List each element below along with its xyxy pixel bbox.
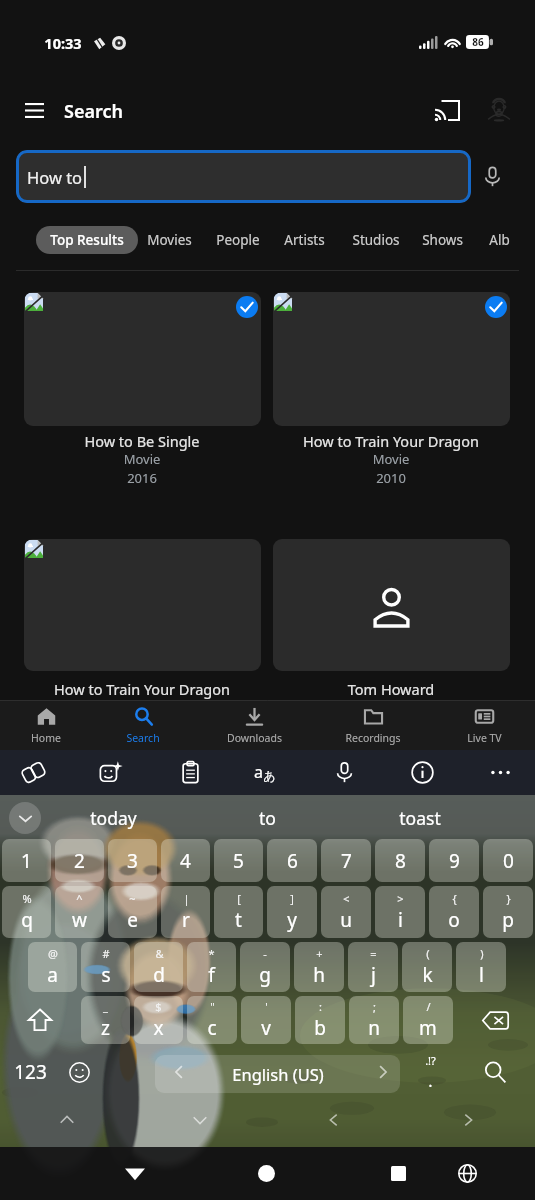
staticText: Top Results — [50, 231, 124, 249]
button[interactable]: Translate — [245, 752, 285, 792]
button[interactable]: # — [81, 942, 130, 992]
button[interactable]: 5 — [214, 839, 263, 882]
staticText: i — [398, 907, 403, 933]
button[interactable]: Recordings — [325, 700, 421, 750]
button[interactable]: ~ — [108, 886, 157, 938]
button[interactable]: Expand toolbar — [9, 802, 41, 834]
button[interactable]: Right — [446, 1098, 490, 1142]
button[interactable]: Top Results — [36, 226, 138, 254]
button[interactable]: People — [216, 229, 260, 251]
button[interactable]: Down — [178, 1098, 222, 1142]
button[interactable]: [ — [214, 886, 263, 938]
button[interactable]: * — [187, 942, 236, 992]
button[interactable]: Gboard — [13, 752, 53, 792]
staticText: Home — [31, 731, 61, 745]
button[interactable]: ( — [402, 942, 452, 992]
button[interactable]: + — [294, 942, 344, 992]
button[interactable]: / — [403, 996, 453, 1044]
button[interactable]: @ — [28, 942, 77, 992]
button[interactable]: ) — [456, 942, 506, 992]
button[interactable]: Downloads — [206, 700, 302, 750]
staticText: p — [502, 907, 514, 933]
button[interactable]: Info — [402, 752, 442, 792]
button[interactable]: Voice search — [472, 156, 512, 196]
button[interactable]: ^ — [55, 886, 104, 938]
button[interactable]: Alb — [489, 229, 510, 251]
button[interactable]: < — [321, 886, 371, 938]
button[interactable]: " — [187, 996, 237, 1044]
button[interactable]: Emoji — [57, 1046, 101, 1098]
button[interactable]: 123 — [4, 1046, 56, 1098]
button[interactable]: 4 — [161, 839, 210, 882]
button[interactable]: = — [348, 942, 398, 992]
button[interactable]: ] — [267, 886, 317, 938]
button[interactable]: today — [53, 795, 173, 841]
button[interactable]: English (US) — [155, 1055, 400, 1093]
button[interactable]: % — [2, 886, 51, 938]
button[interactable]: | — [161, 886, 210, 938]
button[interactable]: 0 — [483, 839, 533, 882]
button[interactable]: Open navigation menu — [14, 90, 54, 130]
button[interactable]: Studios — [352, 229, 400, 251]
button[interactable]: Backspace — [455, 994, 535, 1046]
button[interactable]: Home — [244, 1147, 288, 1200]
button[interactable]: Up — [45, 1098, 89, 1142]
button[interactable]: How to Train Your Dragon — [24, 539, 261, 671]
button[interactable]: Previous language — [157, 1046, 201, 1098]
button[interactable]: 9 — [429, 839, 479, 882]
button[interactable]: - — [240, 942, 290, 992]
staticText: 6 — [287, 848, 298, 874]
button[interactable]: to — [207, 795, 327, 841]
staticText: [ — [237, 891, 241, 906]
button[interactable]: 6 — [267, 839, 317, 882]
button[interactable]: .!? — [408, 1046, 452, 1098]
staticText: < — [343, 891, 350, 906]
staticText: v — [261, 1015, 271, 1041]
staticText: f — [208, 962, 215, 988]
button[interactable]: Account — [477, 88, 521, 132]
button[interactable]: Search — [64, 99, 123, 124]
staticText: e — [127, 907, 138, 933]
button[interactable]: Stickers — [90, 752, 130, 792]
button[interactable]: $ — [134, 996, 183, 1044]
button[interactable]: > — [375, 886, 425, 938]
button[interactable]: Movies — [147, 229, 192, 251]
button[interactable]: Search — [473, 1046, 517, 1098]
button[interactable]: More options — [480, 752, 520, 792]
button[interactable]: toast — [360, 795, 480, 841]
button[interactable]: Shows — [422, 229, 463, 251]
button[interactable]: _ — [81, 996, 130, 1044]
staticText: 2010 — [266, 469, 516, 487]
button[interactable]: How to — [16, 150, 471, 203]
button[interactable]: Next language — [361, 1046, 405, 1098]
button[interactable]: & — [134, 942, 183, 992]
button[interactable]: Change keyboard — [445, 1147, 489, 1200]
button[interactable]: Clipboard — [170, 752, 210, 792]
button[interactable]: Recent apps — [376, 1147, 420, 1200]
staticText: @ — [48, 946, 58, 961]
button[interactable]: ' — [241, 996, 291, 1044]
button[interactable]: Shift — [0, 994, 79, 1046]
button[interactable]: 3 — [108, 839, 157, 882]
button[interactable]: Tom Howard — [273, 539, 510, 671]
button[interactable]: Cast — [425, 88, 469, 132]
button[interactable]: How to Be Single — [24, 292, 261, 426]
staticText: 10:33 — [44, 33, 82, 53]
button[interactable]: Search — [95, 700, 191, 750]
button[interactable]: Back — [113, 1147, 157, 1200]
button[interactable]: : — [295, 996, 345, 1044]
button[interactable]: { — [429, 886, 479, 938]
button[interactable]: Artists — [284, 229, 325, 251]
button[interactable]: How to Train Your Dragon — [273, 292, 510, 426]
button[interactable]: Home — [0, 700, 94, 750]
button[interactable]: Voice input — [324, 752, 364, 792]
button[interactable]: Live TV — [436, 700, 532, 750]
button[interactable]: 1 — [2, 839, 51, 882]
button[interactable]: 7 — [321, 839, 371, 882]
button[interactable]: ; — [349, 996, 399, 1044]
button[interactable]: 8 — [375, 839, 425, 882]
button[interactable]: } — [483, 886, 533, 938]
button[interactable]: Left — [312, 1098, 356, 1142]
staticText: Movies — [147, 231, 192, 249]
button[interactable]: 2 — [55, 839, 104, 882]
